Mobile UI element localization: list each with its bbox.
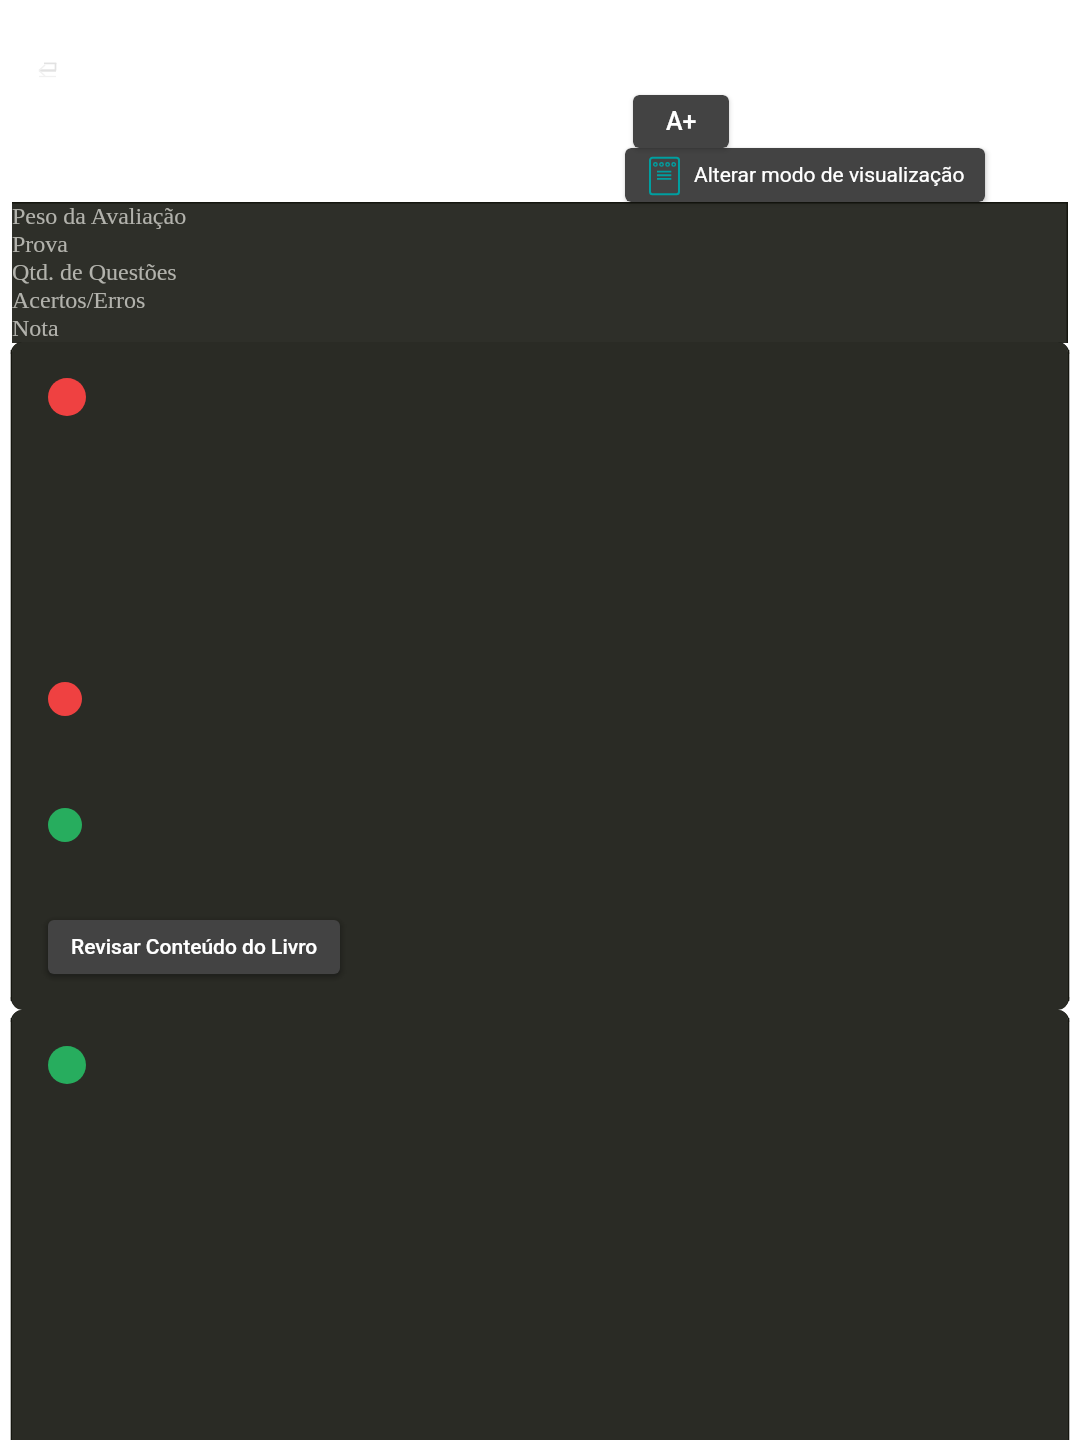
button[interactable]: Peso da Avaliação bbox=[12, 202, 1068, 343]
staticText: Revisar Conteúdo do Livro bbox=[71, 935, 318, 960]
button[interactable] bbox=[12, 1010, 1068, 1440]
button[interactable]: Voltar bbox=[20, 46, 68, 94]
staticText: Acertos/Erros bbox=[12, 287, 146, 314]
staticText: Prova bbox=[12, 231, 68, 258]
button[interactable]: Revisar Conteúdo do Livro bbox=[12, 342, 1068, 1010]
staticText: A+ bbox=[666, 107, 697, 136]
button[interactable]: Alterar modo de visualização bbox=[625, 148, 985, 202]
button[interactable]: A+ bbox=[633, 95, 729, 148]
staticText: Nota bbox=[12, 315, 59, 342]
staticText: Qtd. de Questões bbox=[12, 259, 177, 286]
button[interactable]: Revisar Conteúdo do Livro bbox=[48, 920, 340, 974]
staticText: Alterar modo de visualização bbox=[694, 163, 965, 188]
staticText: Peso da Avaliação bbox=[12, 203, 187, 230]
